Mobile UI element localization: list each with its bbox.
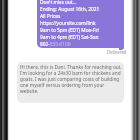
- staticText: Delivered: [107, 49, 127, 55]
- button[interactable]: Don't miss out...: [37, 0, 124, 48]
- staticText: Don't miss out...: [40, 0, 77, 6]
- staticText: https://yoursite.com/link: [40, 20, 96, 27]
- staticText: goats. I was just comparing costs of bui…: [20, 76, 120, 82]
- button[interactable]: Hi there, this is Dani. Thanks for reach…: [17, 62, 124, 103]
- staticText: one myself versus ordering from your: [20, 82, 105, 88]
- staticText: 9am to 4pm (EDT) Sat-Sun: [40, 34, 99, 41]
- staticText: I'm looking for a 24x30 barn for chicken…: [20, 70, 121, 76]
- staticText: All Prices: [40, 13, 61, 20]
- staticText: website.: [20, 88, 39, 94]
- staticText: Hi there, this is Dani. Thanks for reach…: [20, 64, 122, 70]
- staticText: 9am to 5pm (EDT) Mon-Fri: [40, 27, 99, 34]
- staticText: Ending: August 16th, 2021: [40, 6, 100, 13]
- staticText: 802-555-0100: [40, 41, 71, 48]
